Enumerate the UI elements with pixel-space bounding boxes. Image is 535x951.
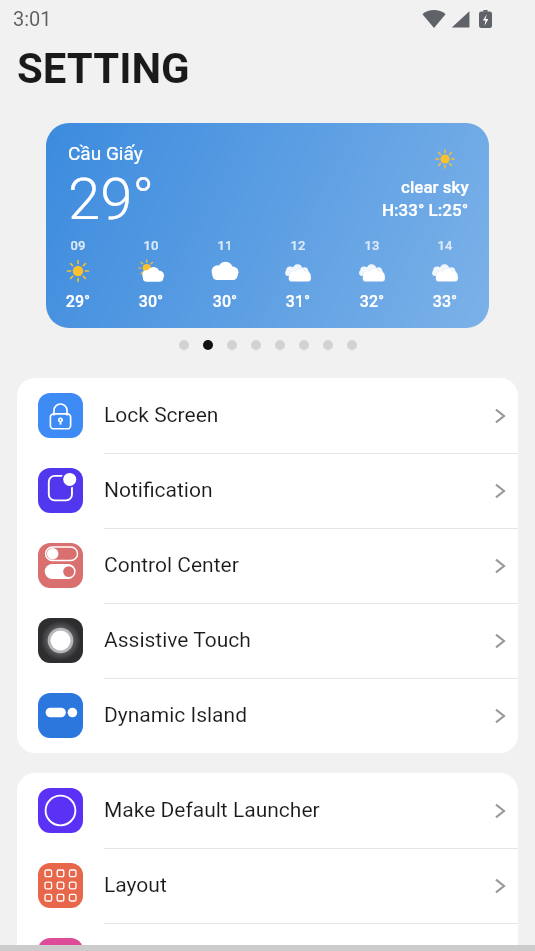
staticText: Dynamic Island (104, 703, 495, 728)
button[interactable]: Layout (17, 848, 518, 923)
staticText: 30° (199, 292, 251, 311)
staticText: 13 (346, 238, 398, 253)
staticText: 12 (272, 238, 324, 253)
staticText: 32° (346, 292, 398, 311)
staticText: Lock Screen (104, 403, 495, 428)
staticText: SETTING (17, 44, 190, 93)
staticText: 11 (199, 238, 251, 253)
button[interactable]: Lock Screen (17, 378, 518, 453)
staticText: 09 (52, 238, 104, 253)
staticText: 33° (419, 292, 471, 311)
button[interactable]: Wallpaper (17, 923, 518, 951)
button[interactable]: Notification (17, 453, 518, 528)
staticText: Make Default Launcher (104, 798, 495, 823)
staticText: Assistive Touch (104, 628, 495, 653)
staticText: 10 (125, 238, 177, 253)
staticText: 3:01 (13, 7, 52, 30)
staticText: 31° (272, 292, 324, 311)
staticText: 14 (419, 238, 471, 253)
staticText: Layout (104, 873, 495, 898)
staticText: clear sky (401, 177, 469, 197)
staticText: 29° (52, 292, 104, 311)
staticText: Cầu Giấy (68, 142, 143, 164)
staticText: Notification (104, 478, 495, 503)
button[interactable]: Control Center (17, 528, 518, 603)
staticText: 30° (125, 292, 177, 311)
staticText: H:33° L:25° (382, 200, 469, 220)
button[interactable]: Dynamic Island (17, 678, 518, 753)
button[interactable]: Make Default Launcher (17, 773, 518, 848)
staticText: Control Center (104, 553, 495, 578)
button[interactable]: Cầu Giấy (46, 123, 489, 328)
staticText: 29° (68, 165, 155, 233)
button[interactable]: Assistive Touch (17, 603, 518, 678)
